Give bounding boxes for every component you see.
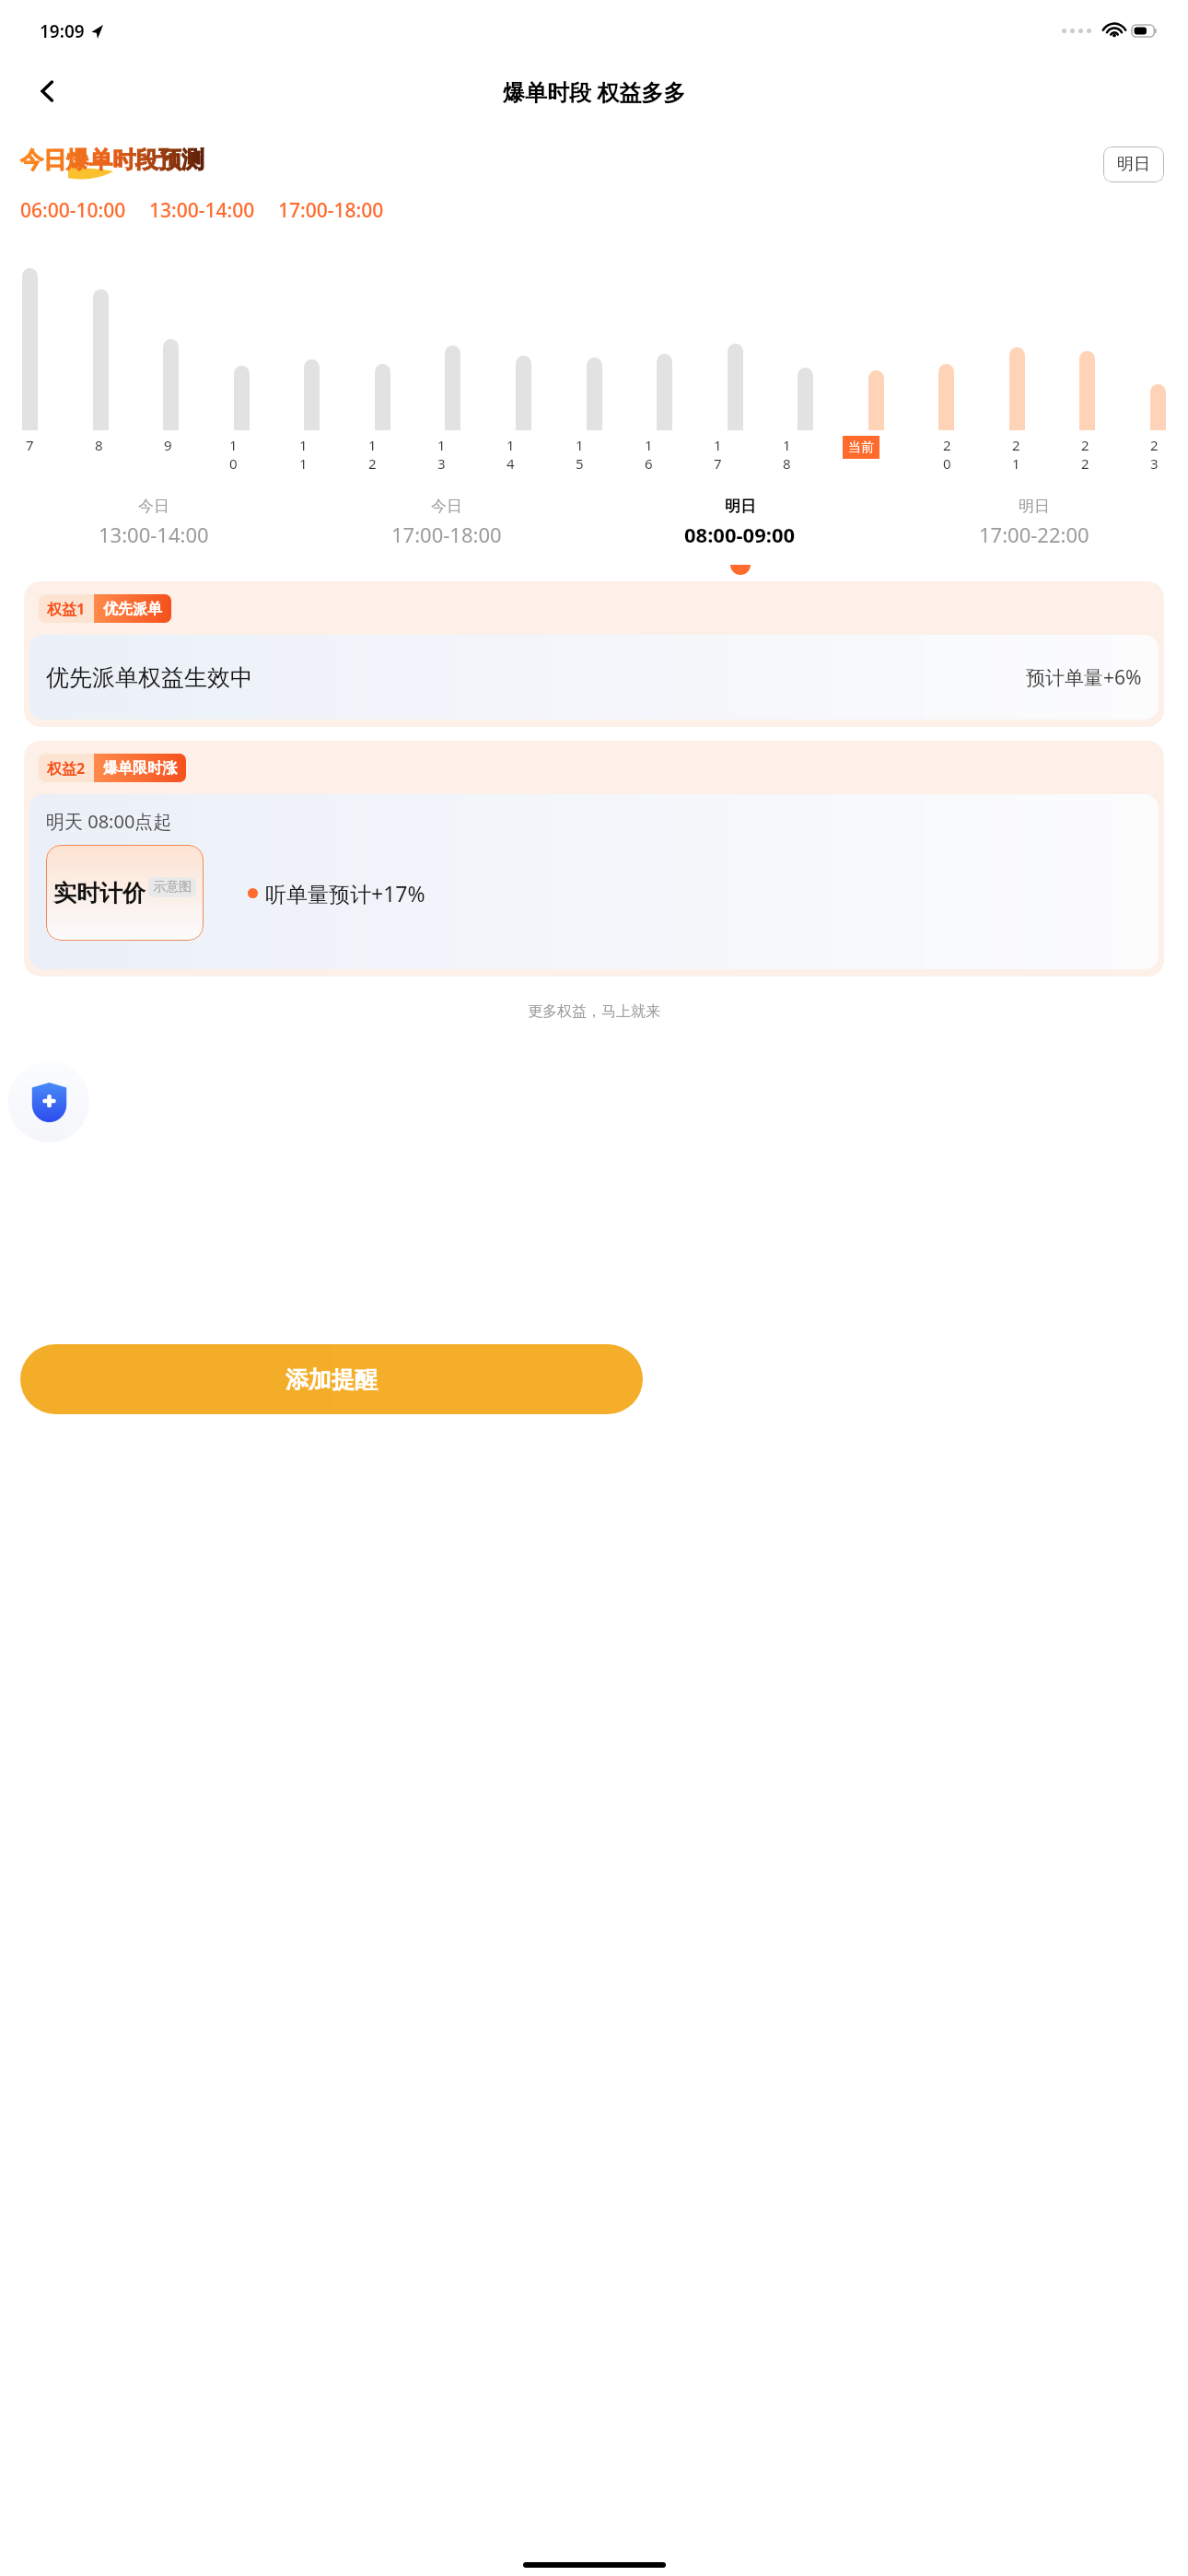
staticText: 18 xyxy=(783,436,798,473)
staticText: 权益1 xyxy=(47,599,86,619)
staticText: 更多权益，马上就来 xyxy=(0,1002,1188,1021)
button[interactable]: Back xyxy=(24,67,72,115)
staticText: 明日 xyxy=(725,497,756,516)
staticText: 优先派单权益生效中 xyxy=(46,663,253,692)
staticText: 爆单时段 权益多多 xyxy=(503,76,686,107)
staticText: 7 xyxy=(26,436,34,454)
button[interactable]: 今日 xyxy=(300,497,593,555)
staticText: 权益2 xyxy=(47,758,86,779)
staticText: 22 xyxy=(1081,436,1097,473)
staticText: 10 xyxy=(229,436,245,473)
staticText: 16 xyxy=(645,436,660,473)
button[interactable]: 添加提醒 xyxy=(20,1344,643,1414)
staticText: 爆单限时涨 xyxy=(103,759,177,778)
staticText: 17 xyxy=(714,436,729,473)
staticText: 17:00-18:00 xyxy=(278,197,384,224)
staticText: 今日 xyxy=(138,497,169,516)
staticText: 明日 xyxy=(1019,497,1050,516)
staticText: 08:00-09:00 xyxy=(684,521,796,548)
staticText: 12 xyxy=(368,436,384,473)
staticText: 21 xyxy=(1012,436,1028,473)
staticText: 17:00-22:00 xyxy=(979,521,1089,548)
staticText: 优先派单 xyxy=(103,600,162,618)
button[interactable]: Insurance xyxy=(8,1061,89,1142)
staticText: 20 xyxy=(943,436,959,473)
staticText: 23 xyxy=(1150,436,1166,473)
staticText: 明天 08:00点起 xyxy=(46,809,172,834)
staticText: 当前 xyxy=(848,439,874,456)
button[interactable]: 权益1 xyxy=(24,581,1164,727)
button[interactable]: 明日 xyxy=(887,497,1181,555)
staticText: 今日爆单时段预测 xyxy=(20,146,204,174)
staticText: 17:00-18:00 xyxy=(391,521,502,548)
staticText: 06:00-10:00 xyxy=(20,197,126,224)
staticText: 今日 xyxy=(431,497,462,516)
staticText: 13:00-14:00 xyxy=(99,521,209,548)
button[interactable]: 今日 xyxy=(7,497,300,555)
staticText: 明日 xyxy=(1117,154,1150,175)
staticText: 预计单量+6% xyxy=(1026,664,1142,691)
staticText: 示意图 xyxy=(153,879,192,896)
staticText: 听单量预计+17% xyxy=(265,879,425,907)
staticText: 添加提醒 xyxy=(285,1365,378,1394)
staticText: 实时计价 xyxy=(53,879,146,907)
staticText: 13 xyxy=(437,436,453,473)
button[interactable]: 明日 xyxy=(1103,146,1164,182)
staticText: 11 xyxy=(299,436,315,473)
button[interactable]: 明日 xyxy=(593,497,887,565)
staticText: 19:09 xyxy=(40,19,85,43)
staticText: 8 xyxy=(95,436,103,454)
staticText: 9 xyxy=(164,436,172,454)
button[interactable]: 权益2 xyxy=(24,741,1164,977)
staticText: 13:00-14:00 xyxy=(149,197,255,224)
staticText: 14 xyxy=(507,436,522,473)
staticText: 15 xyxy=(576,436,591,473)
